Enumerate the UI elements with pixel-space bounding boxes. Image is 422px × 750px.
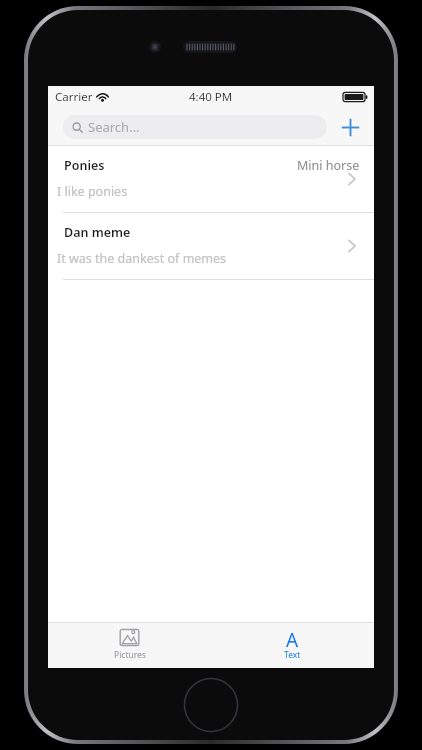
staticText: A bbox=[286, 627, 299, 648]
staticText: I like ponies bbox=[57, 183, 128, 200]
button[interactable]: Search... bbox=[63, 115, 327, 139]
staticText: Carrier bbox=[55, 89, 93, 105]
button[interactable]: Add new item bbox=[337, 114, 363, 140]
staticText: Ponies bbox=[64, 157, 105, 174]
staticText: It was the dankest of memes bbox=[57, 250, 227, 267]
staticText: Text bbox=[284, 649, 301, 661]
button[interactable]: A bbox=[211, 623, 374, 668]
staticText: 4:40 PM bbox=[189, 89, 233, 105]
button[interactable]: Pictures bbox=[48, 623, 211, 668]
staticText: Mini horse bbox=[297, 157, 360, 174]
staticText: Search... bbox=[88, 118, 140, 136]
staticText: Pictures bbox=[114, 649, 146, 661]
button[interactable]: Dan meme bbox=[48, 213, 374, 279]
button[interactable]: Ponies bbox=[48, 146, 374, 212]
staticText: Dan meme bbox=[64, 224, 131, 241]
